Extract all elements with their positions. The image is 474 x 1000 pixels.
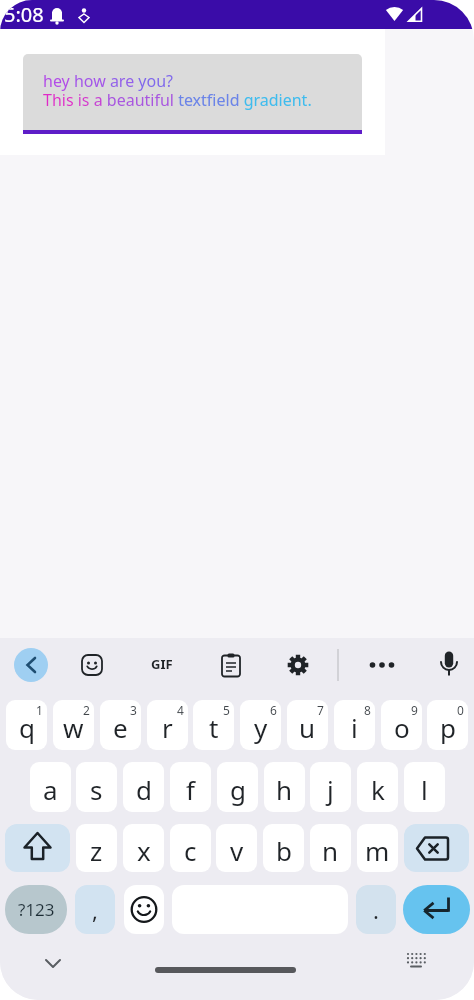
staticText: l <box>421 772 428 807</box>
button[interactable] <box>282 649 314 681</box>
staticText: m <box>365 833 390 868</box>
button[interactable]: ?123 <box>5 885 67 934</box>
staticText: k <box>371 772 385 807</box>
button[interactable]: u <box>287 700 328 750</box>
button[interactable]: w <box>53 700 94 750</box>
staticText: 2 <box>83 702 90 718</box>
button[interactable]: b <box>263 824 304 872</box>
button[interactable] <box>403 885 470 934</box>
button[interactable]: v <box>216 824 257 872</box>
button[interactable] <box>433 649 465 681</box>
button[interactable] <box>404 824 469 872</box>
staticText: 3 <box>130 702 137 718</box>
staticText: ?123 <box>18 898 55 921</box>
staticText: n <box>322 833 339 868</box>
staticText: 9 <box>411 702 418 718</box>
button[interactable]: a <box>30 762 71 812</box>
button[interactable]: l <box>404 762 445 812</box>
button[interactable]: GIF <box>147 651 177 677</box>
button[interactable] <box>403 948 433 974</box>
staticText: g <box>230 772 246 807</box>
staticText: 5:08 <box>4 1 44 28</box>
button[interactable] <box>5 824 70 872</box>
button[interactable]: d <box>123 762 164 812</box>
staticText: j <box>327 772 334 807</box>
button[interactable]: g <box>217 762 258 812</box>
staticText: 5 <box>223 702 230 718</box>
staticText: GIF <box>151 655 173 673</box>
staticText: 1 <box>36 702 43 718</box>
button[interactable]: h <box>264 762 305 812</box>
staticText: 4 <box>177 702 184 718</box>
staticText: e <box>113 710 128 745</box>
staticText: w <box>63 710 84 745</box>
staticText: z <box>90 833 103 868</box>
button[interactable] <box>215 649 247 681</box>
button[interactable]: m <box>357 824 398 872</box>
button[interactable]: y <box>240 700 281 750</box>
button[interactable]: r <box>147 700 188 750</box>
staticText: , <box>92 895 98 925</box>
button[interactable]: p <box>427 700 468 750</box>
staticText: y <box>254 710 268 745</box>
button[interactable] <box>14 648 48 682</box>
staticText: r <box>162 710 173 745</box>
button[interactable]: , <box>75 885 115 934</box>
staticText: hey how are you? This is a beautiful tex… <box>43 70 312 111</box>
staticText: u <box>299 710 316 745</box>
button[interactable] <box>124 885 164 934</box>
staticText: s <box>90 772 103 807</box>
button[interactable] <box>76 649 108 681</box>
button[interactable]: i <box>334 700 375 750</box>
button[interactable]: k <box>357 762 398 812</box>
staticText: a <box>43 772 58 807</box>
staticText: v <box>230 833 244 868</box>
button[interactable]: z <box>76 824 117 872</box>
button[interactable]: c <box>170 824 211 872</box>
button[interactable]: x <box>123 824 164 872</box>
staticText: q <box>19 710 35 745</box>
button[interactable]: q <box>6 700 47 750</box>
staticText: d <box>136 772 152 807</box>
staticText: 7 <box>317 702 324 718</box>
button[interactable]: e <box>100 700 141 750</box>
staticText: c <box>184 833 197 868</box>
staticText: . <box>373 895 379 925</box>
button[interactable]: s <box>76 762 117 812</box>
button[interactable]: n <box>310 824 351 872</box>
button[interactable]: . <box>356 885 396 934</box>
staticText: t <box>209 710 219 745</box>
staticText: 6 <box>270 702 277 718</box>
staticText: 8 <box>364 702 371 718</box>
button[interactable] <box>40 952 66 974</box>
button[interactable]: hey how are you? This is a beautiful tex… <box>23 54 362 130</box>
staticText: o <box>394 710 410 745</box>
button[interactable]: f <box>170 762 211 812</box>
staticText: 0 <box>457 702 464 718</box>
staticText: p <box>440 710 456 745</box>
staticText: i <box>351 710 358 745</box>
button[interactable]: o <box>381 700 422 750</box>
button[interactable]: j <box>310 762 351 812</box>
button[interactable]: t <box>193 700 234 750</box>
staticText: h <box>276 772 293 807</box>
staticText: x <box>137 833 151 868</box>
staticText: f <box>186 772 195 807</box>
staticText: b <box>276 833 292 868</box>
